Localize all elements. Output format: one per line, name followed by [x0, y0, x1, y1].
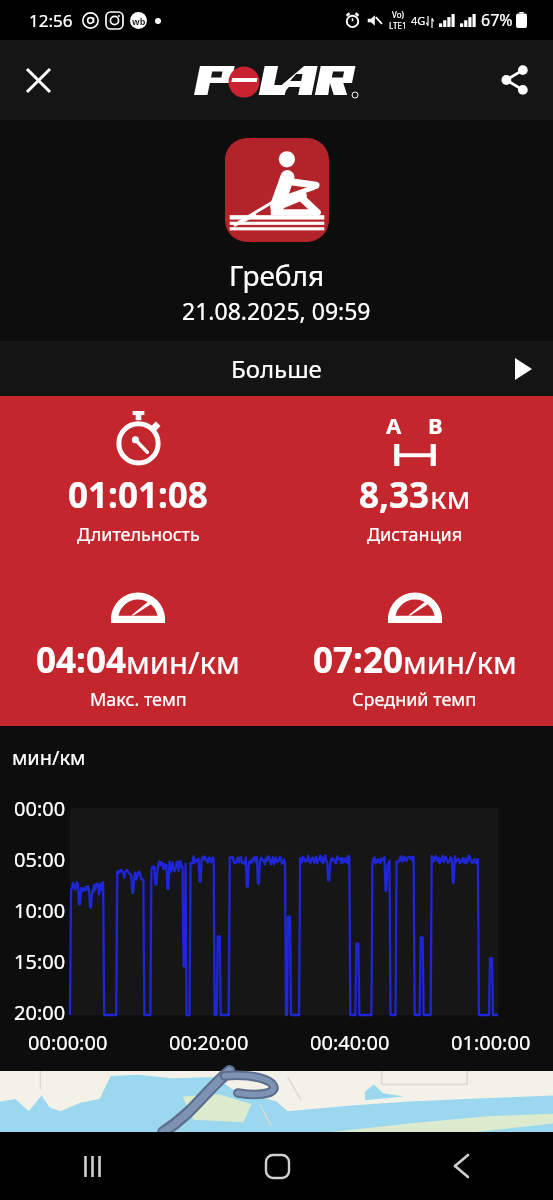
- staticText: 00:20:00: [169, 1029, 249, 1056]
- staticText: 01:01:08: [68, 471, 208, 519]
- staticText: Vo): [392, 9, 404, 20]
- staticText: 04:04: [36, 636, 126, 684]
- button[interactable]: Recent apps: [64, 1138, 120, 1194]
- button[interactable]: Share: [491, 56, 539, 104]
- staticText: Дистанция: [367, 522, 463, 547]
- staticText: 01:00:00: [451, 1029, 531, 1056]
- button[interactable]: Больше: [0, 341, 553, 396]
- button[interactable]: A: [276, 396, 553, 561]
- staticText: 20:00: [14, 999, 66, 1026]
- staticText: мин/км: [12, 744, 86, 771]
- staticText: 07:20: [313, 636, 403, 684]
- button[interactable]: Back: [433, 1138, 489, 1194]
- staticText: LTE1: [389, 20, 407, 31]
- staticText: 05:00: [14, 846, 66, 873]
- staticText: Макс. темп: [90, 687, 187, 712]
- button[interactable]: 04:04: [0, 561, 276, 726]
- staticText: 4G: [411, 13, 426, 28]
- staticText: км: [430, 476, 471, 518]
- button[interactable]: Home: [249, 1138, 305, 1194]
- staticText: мин/км: [403, 641, 517, 683]
- staticText: 00:40:00: [310, 1029, 390, 1056]
- staticText: 10:00: [14, 897, 66, 924]
- button[interactable]: 07:20: [276, 561, 553, 726]
- staticText: 21.08.2025, 09:59: [182, 295, 371, 326]
- staticText: 00:00: [14, 795, 66, 822]
- staticText: Гребля: [229, 256, 325, 294]
- staticText: B: [428, 410, 443, 440]
- staticText: 12:56: [29, 9, 73, 32]
- staticText: Больше: [231, 352, 322, 385]
- staticText: 00:00:00: [28, 1029, 108, 1056]
- staticText: мин/км: [126, 641, 240, 683]
- staticText: 67%: [481, 9, 513, 31]
- staticText: 8,33: [359, 471, 430, 519]
- button[interactable]: Close: [14, 56, 62, 104]
- button[interactable]: 01:01:08: [0, 396, 276, 561]
- staticText: wb: [132, 15, 146, 27]
- staticText: 15:00: [14, 948, 66, 975]
- staticText: Средний темп: [352, 687, 477, 712]
- staticText: Длительность: [77, 522, 200, 547]
- staticText: A: [386, 410, 402, 440]
